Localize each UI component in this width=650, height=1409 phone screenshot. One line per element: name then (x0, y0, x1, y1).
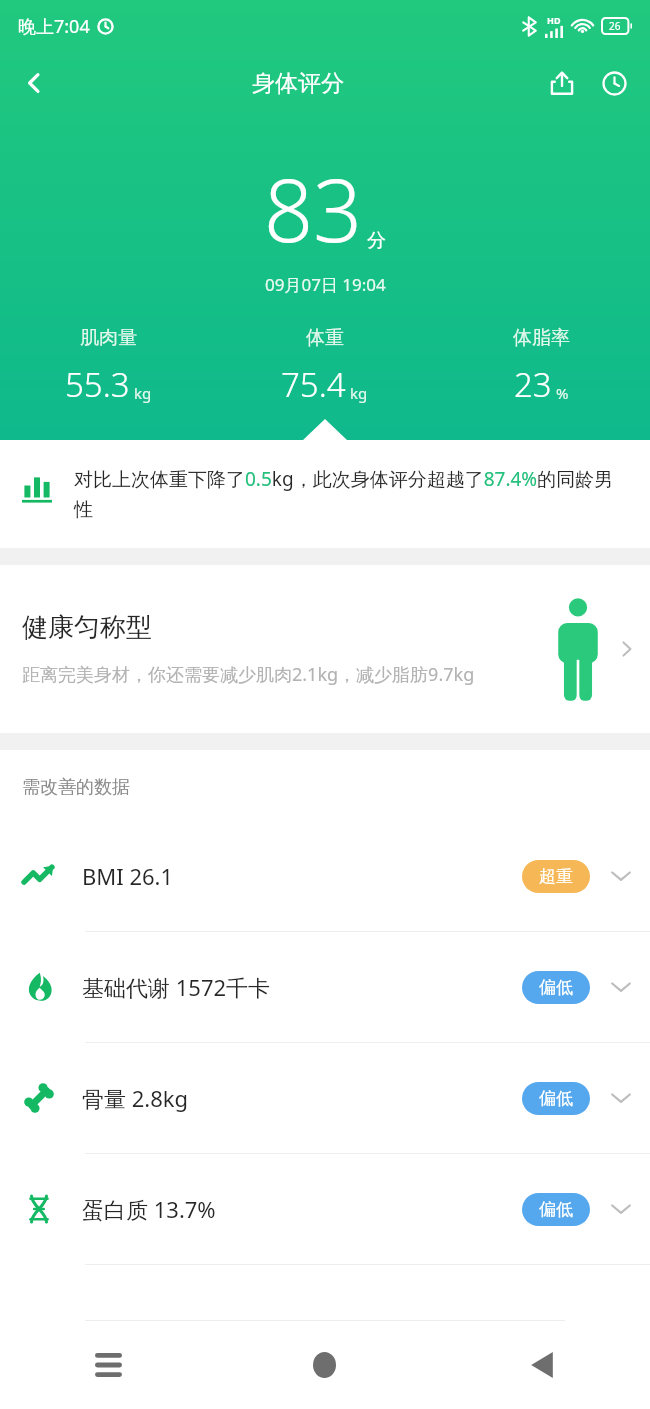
button[interactable]: History (588, 57, 640, 109)
button[interactable]: Home (216, 1321, 433, 1409)
staticText: 75.4 (281, 362, 346, 407)
staticText: 需改善的数据 (22, 776, 130, 799)
staticText: 体脂率 (513, 326, 570, 350)
staticText: kg (350, 383, 368, 403)
staticText: 骨量 2.8kg (82, 1083, 189, 1113)
staticText: 体重 (306, 326, 344, 350)
staticText: 超重 (539, 866, 573, 887)
button[interactable]: BMI 26.1 (0, 821, 650, 931)
staticText: 分 (367, 229, 386, 253)
staticText: 09月07日 19:04 (265, 273, 386, 296)
staticText: 对比上次体重下降了0.5kg，此次身体评分超越了87.4%的同龄男性 (74, 466, 630, 522)
staticText: 26 (609, 19, 621, 33)
staticText: 蛋白质 13.7% (82, 1194, 216, 1224)
staticText: 距离完美身材，你还需要减少肌肉2.1kg，减少脂肪9.7kg (22, 662, 475, 687)
button[interactable]: 蛋白质 13.7% (0, 1154, 650, 1264)
staticText: 偏低 (539, 977, 573, 998)
button[interactable]: 健康匀称型 (0, 565, 650, 733)
button[interactable]: 骨量 2.8kg (0, 1043, 650, 1153)
staticText: 健康匀称型 (22, 611, 152, 644)
staticText: 肌肉量 (80, 326, 137, 350)
button[interactable]: 基础代谢 1572千卡 (0, 932, 650, 1042)
staticText: % (556, 383, 569, 403)
button[interactable]: Share (536, 57, 588, 109)
button[interactable]: Back (433, 1321, 650, 1409)
staticText: 偏低 (539, 1199, 573, 1220)
button[interactable]: Back (8, 57, 60, 109)
staticText: 偏低 (539, 1088, 573, 1109)
staticText: 基础代谢 1572千卡 (82, 972, 271, 1002)
staticText: 晚上7:04 (18, 14, 90, 39)
staticText: 23 (514, 362, 552, 407)
staticText: HD (547, 14, 561, 26)
staticText: BMI 26.1 (82, 861, 174, 891)
staticText: 55.3 (65, 362, 130, 407)
button[interactable]: Recents (0, 1321, 216, 1409)
staticText: kg (134, 383, 152, 403)
button[interactable]: 对比上次体重下降了0.5kg，此次身体评分超越了87.4%的同龄男性 (0, 440, 650, 548)
staticText: 83 (264, 150, 363, 267)
staticText: 身体评分 (252, 69, 344, 98)
